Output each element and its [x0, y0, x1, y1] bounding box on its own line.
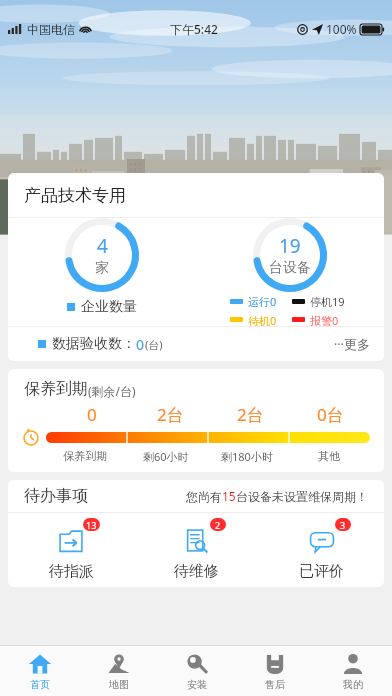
button[interactable]: 安装	[158, 646, 236, 696]
staticText: 0台	[317, 403, 344, 426]
staticText: 中国电信	[27, 22, 75, 37]
staticText: 0	[136, 335, 145, 354]
staticText: 保养到期	[24, 379, 88, 399]
staticText: 待指派	[49, 562, 94, 581]
staticText: 3	[340, 519, 346, 531]
button[interactable]: 数据验收数：	[8, 327, 384, 361]
staticText: 地图	[109, 678, 129, 691]
button[interactable]: 我的	[314, 646, 392, 696]
staticText: 企业数量	[81, 298, 137, 316]
staticText: 停机19	[310, 294, 345, 309]
staticText: 4	[97, 233, 108, 259]
staticText: 其他	[318, 449, 340, 463]
staticText: 首页	[30, 678, 50, 691]
button[interactable]: 售后	[236, 646, 314, 696]
staticText: 2台	[157, 403, 184, 426]
staticText: 台设备未设置维保周期！	[236, 489, 368, 504]
button[interactable]: 地图	[79, 646, 158, 696]
staticText: (剩余/台)	[88, 383, 136, 399]
staticText: 19	[279, 233, 301, 259]
staticText: 售后	[265, 678, 285, 691]
staticText: 0	[87, 403, 97, 426]
button[interactable]: 2	[134, 513, 259, 587]
staticText: 保养到期	[63, 449, 107, 463]
button[interactable]: 3	[259, 513, 384, 587]
staticText: 家	[95, 259, 109, 277]
staticText: 产品技术专用	[24, 185, 126, 206]
staticText: 13	[86, 519, 97, 531]
staticText: 2台	[237, 403, 264, 426]
staticText: 台设备	[269, 259, 311, 277]
staticText: 数据验收数：	[52, 335, 136, 353]
staticText: 安装	[187, 678, 207, 691]
staticText: 待机0	[248, 313, 277, 326]
staticText: 剩180小时	[221, 449, 273, 464]
staticText: 待维修	[174, 562, 219, 581]
staticText: 报警0	[310, 313, 339, 326]
staticText: 我的	[343, 678, 363, 691]
button[interactable]: 13	[8, 513, 134, 587]
staticText: 待办事项	[24, 486, 88, 506]
staticText: 运行0	[248, 294, 277, 309]
staticText: 15	[222, 488, 236, 504]
staticText: (台)	[145, 337, 163, 352]
staticText: 剩60小时	[143, 449, 189, 464]
staticText: 已评价	[299, 562, 344, 581]
button[interactable]: 首页	[0, 646, 79, 696]
staticText: ···	[334, 336, 344, 352]
staticText: 更多	[344, 336, 370, 352]
staticText: 下午5:42	[170, 21, 218, 37]
staticText: 100%	[326, 21, 357, 37]
staticText: 2	[215, 519, 221, 531]
staticText: 您尚有	[186, 489, 222, 504]
